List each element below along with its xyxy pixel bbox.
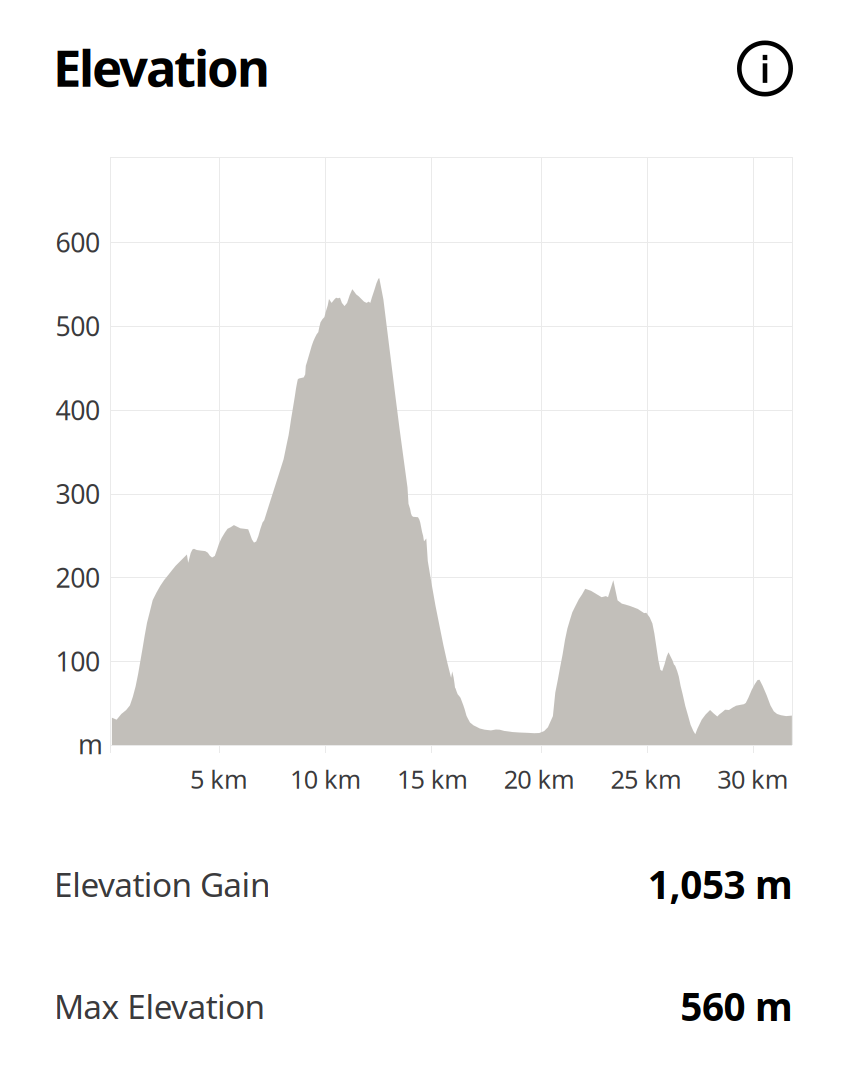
staticText: 5 km — [190, 762, 248, 796]
staticText: 400 — [56, 392, 100, 427]
staticText: 560 m — [680, 980, 793, 1032]
staticText: 10 km — [290, 762, 361, 796]
staticText: 25 km — [610, 762, 682, 796]
staticText: 100 — [56, 643, 100, 679]
staticText: Max Elevation — [54, 984, 266, 1028]
staticText: 300 — [56, 476, 100, 511]
staticText: 15 km — [397, 762, 468, 796]
staticText: Elevation — [53, 33, 270, 101]
button[interactable]: About this chart — [737, 37, 793, 96]
staticText: 600 — [56, 224, 100, 260]
staticText: 200 — [56, 560, 100, 595]
staticText: m — [78, 726, 103, 762]
staticText: 1,053 m — [648, 858, 793, 910]
staticText: Elevation Gain — [54, 862, 271, 906]
staticText: 20 km — [504, 762, 575, 796]
staticText: 500 — [56, 308, 100, 344]
staticText: 30 km — [717, 762, 789, 796]
